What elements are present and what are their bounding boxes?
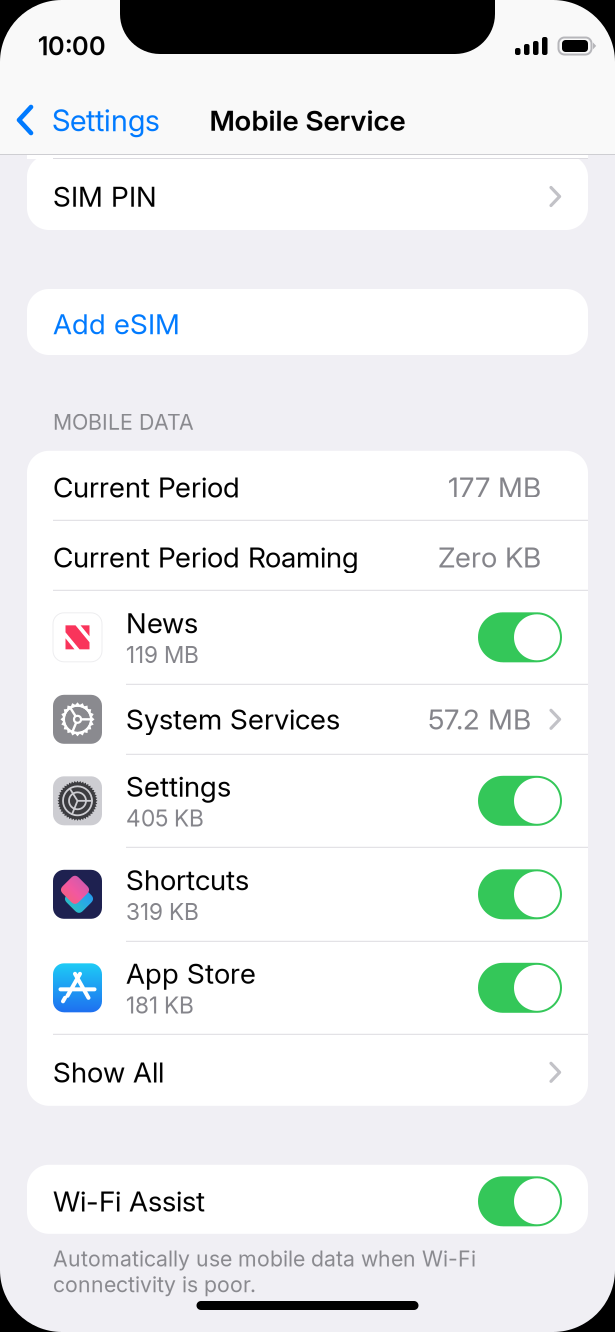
staticText: SIM PIN [53, 180, 157, 213]
staticText: 177 MB [448, 470, 541, 504]
staticText: System Services [126, 702, 340, 736]
button[interactable]: Wi-Fi Assist [27, 1165, 588, 1234]
button[interactable]: Current Period [27, 451, 588, 520]
staticText: App Store [126, 957, 256, 991]
staticText: MOBILE DATA [53, 409, 194, 435]
button[interactable]: News [27, 591, 588, 684]
button[interactable]: App Store [27, 942, 588, 1034]
staticText: 119 MB [126, 641, 199, 668]
staticText: Current Period Roaming [53, 540, 359, 574]
staticText: News [126, 606, 198, 640]
staticText: 57.2 MB [428, 702, 531, 736]
staticText: Shortcuts [126, 863, 249, 897]
staticText: 405 KB [126, 804, 204, 832]
staticText: 10:00 [38, 31, 106, 61]
staticText: Wi-Fi Assist [53, 1184, 205, 1218]
button[interactable]: Current Period Roaming [27, 521, 588, 590]
staticText: Automatically use mobile data when Wi-Fi… [53, 1246, 476, 1297]
button[interactable]: Shortcuts [27, 848, 588, 941]
staticText: Add eSIM [53, 307, 180, 341]
staticText: Show All [53, 1055, 164, 1089]
staticText: Current Period [53, 470, 240, 504]
staticText: Settings [126, 770, 231, 804]
button[interactable]: Add eSIM [27, 289, 588, 355]
staticText: Mobile Service [209, 104, 405, 137]
button[interactable]: Settings [0, 93, 160, 148]
staticText: Settings [52, 103, 160, 138]
button[interactable]: System Services [27, 685, 588, 754]
button[interactable]: SIM PIN [27, 159, 588, 230]
button[interactable]: Settings [27, 755, 588, 847]
staticText: Zero KB [438, 540, 541, 574]
button[interactable]: Show All [27, 1035, 588, 1106]
staticText: 319 KB [126, 898, 199, 925]
staticText: 181 KB [126, 991, 194, 1019]
